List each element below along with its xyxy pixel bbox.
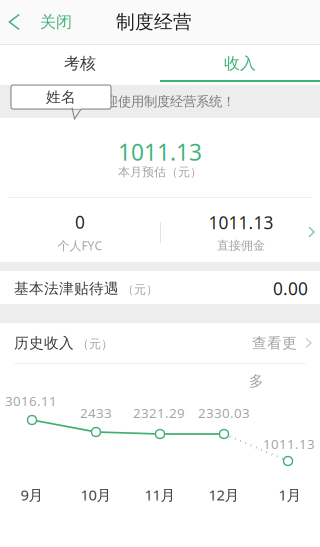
staticText: 收入 [224,54,256,73]
staticText: 1011.13 [263,435,315,453]
staticText: 2321.29 [133,404,185,422]
staticText: 关闭 [40,12,72,32]
staticText: 历史收入 [14,334,74,352]
staticText: 姓名 [46,88,76,106]
staticText: 尊敬的客户，欢迎使用制度经营系统！ [14,93,235,110]
button[interactable]: 关闭 [0,0,86,44]
button[interactable]: 0 [0,203,320,261]
staticText: 考核 [64,54,96,73]
staticText: 1011.13 [118,137,202,167]
staticText: 11月 [144,485,175,504]
staticText: 个人FYC [57,237,102,253]
staticText: 2433 [80,404,112,422]
button[interactable]: 收入 [160,45,320,82]
staticText: 1月 [278,485,301,504]
button[interactable]: 历史收入 [0,323,320,363]
staticText: 本月预估（元） [118,165,202,179]
button[interactable]: 考核 [0,45,160,82]
staticText: （元） [77,337,113,351]
staticText: 3016.11 [5,392,57,410]
staticText: 0.00 [273,277,308,300]
staticText: 1011.13 [208,211,273,234]
staticText: 2330.03 [198,404,250,422]
staticText: 查看更 [252,334,297,352]
staticText: 制度经营 [116,10,192,33]
staticText: 0 [75,210,85,233]
staticText: （元） [122,282,158,297]
staticText: 多 [249,372,264,390]
staticText: 9月 [20,485,43,504]
staticText: 基本法津贴待遇 [14,279,119,297]
staticText: 10月 [80,485,111,504]
staticText: 12月 [208,485,239,504]
staticText: 直接佣金 [217,238,265,253]
